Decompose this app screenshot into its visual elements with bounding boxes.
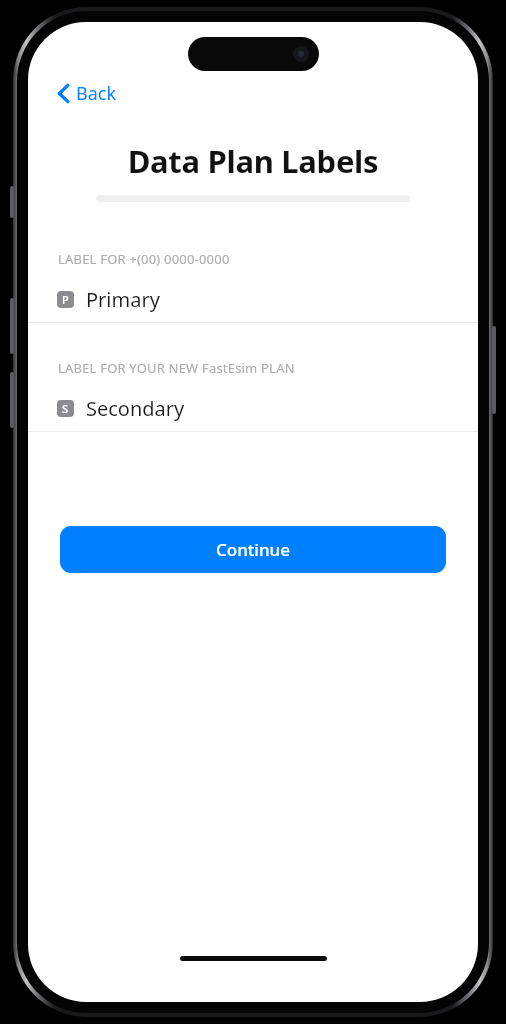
staticText: LABEL FOR +(00) 0000-0000 bbox=[58, 250, 230, 268]
staticText: LABEL FOR YOUR NEW FastEsim PLAN bbox=[58, 359, 295, 377]
staticText: Data Plan Labels bbox=[28, 140, 478, 182]
staticText: Secondary bbox=[86, 395, 185, 422]
staticText: Primary bbox=[86, 286, 160, 313]
staticText: S bbox=[62, 401, 69, 416]
staticText: Back bbox=[76, 81, 117, 106]
button[interactable]: Back bbox=[52, 78, 127, 109]
staticText: Continue bbox=[216, 538, 291, 561]
button[interactable]: P bbox=[28, 281, 478, 322]
staticText: P bbox=[62, 292, 69, 307]
button[interactable]: S bbox=[28, 390, 478, 431]
button[interactable]: Continue bbox=[60, 526, 446, 573]
